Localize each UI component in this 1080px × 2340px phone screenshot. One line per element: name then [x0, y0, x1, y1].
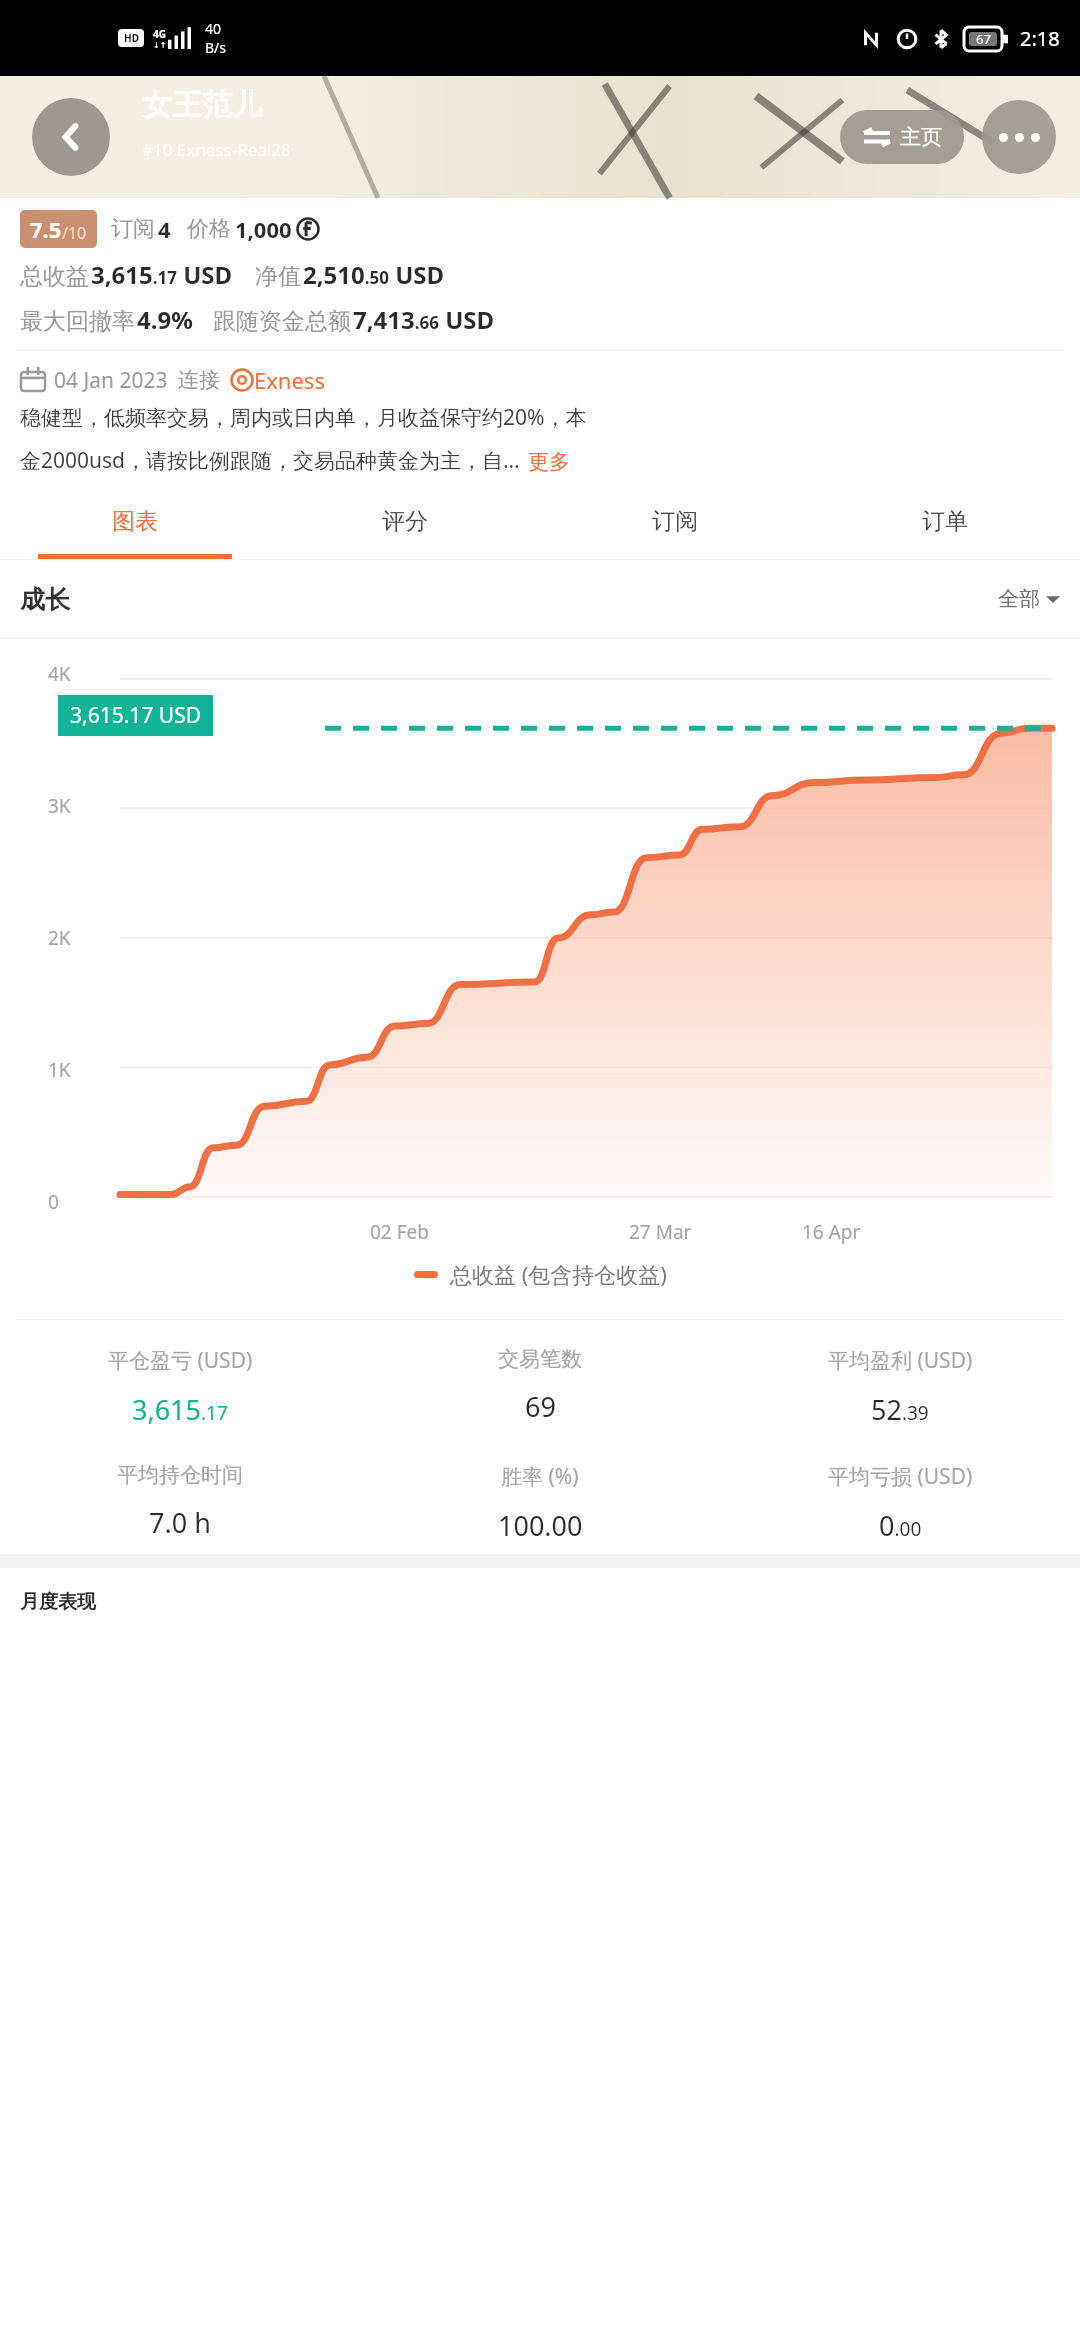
button[interactable]: 全部: [998, 586, 1060, 612]
staticText: 稳健型，低频率交易，周内或日内单，月收益保守约20%，本: [20, 403, 587, 432]
staticText: 4G: [153, 27, 166, 41]
button[interactable]: 订阅: [540, 489, 810, 554]
staticText: 4: [158, 214, 171, 244]
staticText: 订单: [922, 507, 968, 536]
staticText: 胜率 (%): [501, 1462, 579, 1491]
staticText: 52.39: [871, 1391, 929, 1428]
staticText: /10: [62, 222, 87, 244]
staticText: 订阅: [652, 507, 698, 536]
staticText: 2,510.50 USD: [303, 258, 445, 291]
staticText: 2K: [48, 925, 71, 951]
staticText: Exness: [254, 365, 325, 395]
staticText: 1,000: [235, 214, 292, 244]
staticText: 100.00: [498, 1507, 583, 1544]
staticText: 67: [976, 30, 991, 48]
button[interactable]: 订单: [810, 489, 1080, 554]
staticText: 总收益 (包含持仓收益): [450, 1259, 667, 1289]
staticText: ↓↑: [153, 41, 167, 50]
staticText: 69: [525, 1388, 556, 1425]
staticText: 0.00: [879, 1507, 922, 1544]
staticText: 27 Mar: [629, 1219, 692, 1245]
staticText: 净值: [255, 262, 301, 291]
staticText: 主页: [900, 124, 942, 150]
staticText: 平均持仓时间: [117, 1462, 243, 1488]
button[interactable]: 图表: [0, 489, 270, 554]
staticText: 跟随资金总额: [213, 307, 351, 336]
staticText: 3K: [48, 793, 71, 819]
staticText: 女王范儿: [142, 86, 262, 124]
staticText: 0: [48, 1189, 59, 1215]
staticText: 04 Jan 2023: [54, 366, 168, 395]
staticText: 月度表现: [20, 1590, 96, 1614]
staticText: 价格: [187, 215, 231, 243]
button[interactable]: Back: [32, 98, 110, 176]
staticText: 7.5: [30, 214, 62, 244]
staticText: 4K: [48, 661, 71, 687]
staticText: 1K: [48, 1057, 71, 1083]
staticText: 平仓盈亏 (USD): [108, 1346, 253, 1375]
staticText: 交易笔数: [498, 1346, 582, 1372]
staticText: 3,615.17 USD: [70, 701, 201, 730]
staticText: 金2000usd，请按比例跟随，交易品种黄金为主，自…: [20, 446, 520, 475]
staticText: 7.0 h: [149, 1504, 211, 1541]
staticText: 最大回撤率: [20, 307, 135, 336]
staticText: 更多: [528, 449, 570, 475]
staticText: 4.9%: [137, 303, 193, 336]
staticText: 3,615.17: [132, 1391, 228, 1428]
button[interactable]: 主页: [840, 110, 964, 164]
staticText: 40: [205, 19, 222, 38]
staticText: 订阅: [111, 215, 155, 243]
staticText: 全部: [998, 586, 1040, 612]
staticText: 连接: [178, 367, 220, 393]
staticText: 2:18: [1020, 25, 1060, 52]
staticText: 评分: [382, 507, 428, 536]
staticText: B/s: [205, 38, 227, 57]
staticText: 成长: [20, 584, 70, 615]
staticText: 图表: [112, 507, 158, 536]
staticText: 7,413.66 USD: [353, 303, 495, 336]
button[interactable]: 更多: [528, 449, 570, 475]
button[interactable]: More options: [982, 100, 1056, 174]
staticText: #10 Exness-Real28: [142, 138, 291, 161]
button[interactable]: Exness: [230, 365, 325, 395]
staticText: 平均亏损 (USD): [828, 1462, 973, 1491]
staticText: 平均盈利 (USD): [828, 1346, 973, 1375]
staticText: 总收益: [20, 262, 89, 291]
staticText: 02 Feb: [370, 1219, 429, 1245]
staticText: 3,615.17 USD: [91, 258, 233, 291]
staticText: 16 Apr: [802, 1219, 861, 1245]
button[interactable]: 评分: [270, 489, 540, 554]
staticText: HD: [124, 31, 139, 45]
